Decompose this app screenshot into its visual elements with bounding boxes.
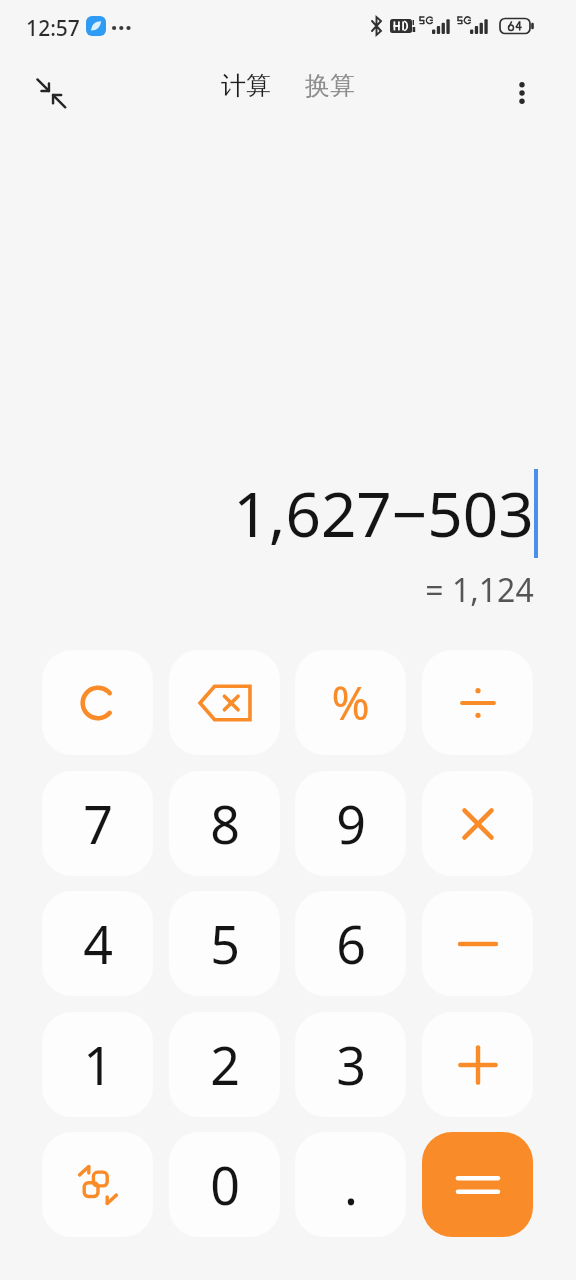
staticText: 5	[210, 908, 240, 979]
button[interactable]: 计算	[215, 66, 277, 105]
staticText: 计算	[221, 70, 271, 101]
button[interactable]: Plus	[422, 1012, 533, 1117]
button[interactable]: Multiply	[422, 771, 533, 876]
staticText: = 1,124	[425, 568, 534, 612]
button[interactable]: More options	[491, 62, 553, 124]
button[interactable]: 4	[42, 891, 153, 996]
button[interactable]: 3	[295, 1012, 406, 1117]
staticText: 7	[83, 788, 113, 859]
button[interactable]: Backspace	[169, 650, 280, 755]
staticText: 6	[336, 908, 366, 979]
button[interactable]: Convert units	[42, 1132, 153, 1237]
button[interactable]: 2	[169, 1012, 280, 1117]
staticText: 9	[336, 788, 366, 859]
staticText: 8	[210, 788, 240, 859]
staticText: 2	[210, 1029, 240, 1100]
staticText: 4	[83, 908, 113, 979]
button[interactable]	[42, 650, 153, 755]
staticText: %	[331, 671, 370, 734]
button[interactable]: Divide	[422, 650, 533, 755]
button[interactable]: 6	[295, 891, 406, 996]
button[interactable]: 1	[42, 1012, 153, 1117]
button[interactable]: 0	[169, 1132, 280, 1237]
staticText: 1,627−503	[233, 471, 534, 555]
staticText: 换算	[305, 70, 355, 101]
button[interactable]: 换算	[299, 66, 361, 105]
button[interactable]: Equals	[422, 1132, 533, 1237]
button[interactable]: .	[295, 1132, 406, 1237]
staticText: 3	[336, 1029, 366, 1100]
staticText: .	[344, 1149, 358, 1220]
button[interactable]: 7	[42, 771, 153, 876]
button[interactable]: %	[295, 650, 406, 755]
button[interactable]: 9	[295, 771, 406, 876]
staticText: 0	[210, 1149, 240, 1220]
button[interactable]: Collapse	[20, 62, 82, 124]
button[interactable]: 5	[169, 891, 280, 996]
button[interactable]: 8	[169, 771, 280, 876]
button[interactable]: Minus	[422, 891, 533, 996]
staticText: 1	[83, 1029, 113, 1100]
staticText: 12:57	[26, 14, 80, 43]
